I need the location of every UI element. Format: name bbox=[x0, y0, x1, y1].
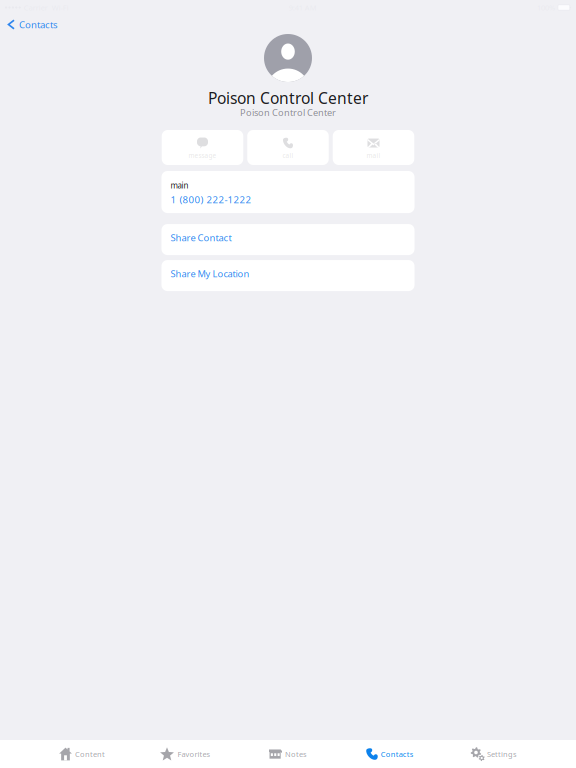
button[interactable]: Contacts bbox=[0, 13, 66, 35]
button[interactable]: call bbox=[247, 130, 329, 165]
button[interactable]: Favorites bbox=[160, 740, 210, 768]
staticText: Poison Control Center bbox=[240, 106, 336, 119]
button[interactable]: message bbox=[162, 130, 243, 165]
staticText: Share My Location bbox=[170, 267, 249, 280]
staticText: Settings bbox=[487, 749, 517, 759]
button[interactable]: Content bbox=[59, 740, 105, 768]
button[interactable]: main bbox=[161, 171, 414, 213]
staticText: Share Contact bbox=[170, 231, 231, 244]
staticText: mail bbox=[366, 151, 380, 160]
staticText: Contacts bbox=[19, 18, 58, 31]
button[interactable]: mail bbox=[333, 130, 414, 165]
staticText: Content bbox=[75, 749, 105, 759]
staticText: message bbox=[188, 151, 216, 160]
staticText: Favorites bbox=[177, 749, 210, 759]
staticText: 1 (800) 222-1222 bbox=[170, 193, 251, 206]
button[interactable]: Settings bbox=[471, 740, 517, 768]
staticText: Contacts bbox=[381, 749, 414, 759]
button[interactable]: Share Contact bbox=[161, 224, 414, 255]
button[interactable]: Notes bbox=[269, 740, 307, 768]
button[interactable]: Share My Location bbox=[161, 260, 414, 291]
staticText: Notes bbox=[285, 749, 307, 759]
staticText: main bbox=[170, 180, 188, 191]
button[interactable]: Contacts bbox=[366, 740, 414, 768]
staticText: call bbox=[282, 151, 293, 160]
staticText: Poison Control Center bbox=[208, 87, 368, 109]
